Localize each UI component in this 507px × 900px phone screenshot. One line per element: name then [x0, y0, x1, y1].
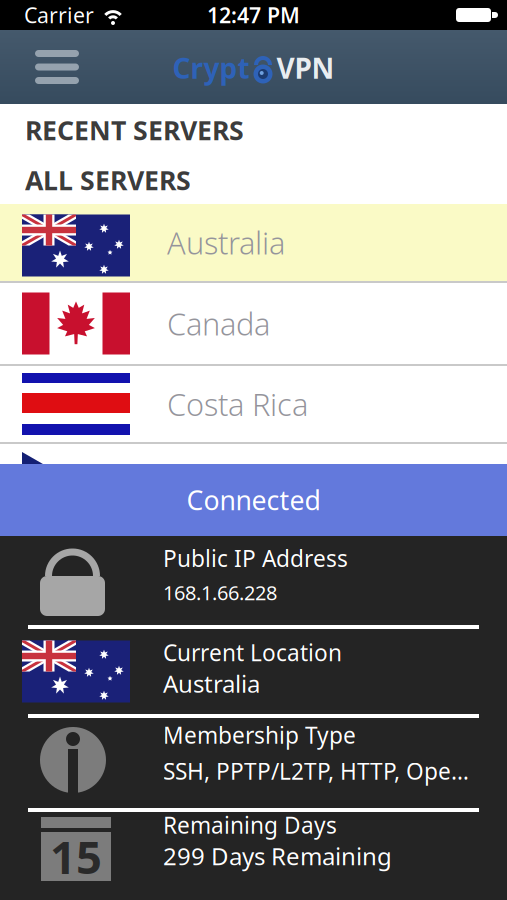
button[interactable]: Menu — [0, 36, 79, 98]
staticText: 12:47 PM — [207, 1, 300, 29]
staticText: 15 — [50, 826, 102, 887]
staticText: Connected — [186, 482, 320, 518]
button[interactable]: Connected — [0, 464, 507, 536]
staticText: VPN — [276, 49, 334, 87]
staticText: ALL SERVERS — [25, 162, 191, 198]
staticText: 168.1.66.228 — [163, 579, 277, 606]
staticText: Carrier — [24, 1, 94, 29]
staticText: Current Location — [163, 637, 342, 668]
button[interactable]: Costa Rica — [0, 366, 507, 444]
staticText: Canada — [167, 303, 270, 344]
staticText: Australia — [163, 668, 260, 699]
staticText: Australia — [167, 222, 285, 263]
staticText: Crypt — [172, 49, 249, 87]
button[interactable]: Australia — [0, 204, 507, 283]
staticText: Public IP Address — [163, 543, 348, 573]
staticText: SSH, PPTP/L2TP, HTTP, Ope… — [163, 756, 469, 786]
staticText: RECENT SERVERS — [25, 112, 244, 148]
staticText: Remaining Days — [163, 810, 337, 840]
staticText: Membership Type — [163, 720, 356, 750]
staticText: 299 Days Remaining — [163, 840, 392, 872]
button[interactable]: Canada — [0, 283, 507, 366]
staticText: Costa Rica — [167, 384, 308, 424]
